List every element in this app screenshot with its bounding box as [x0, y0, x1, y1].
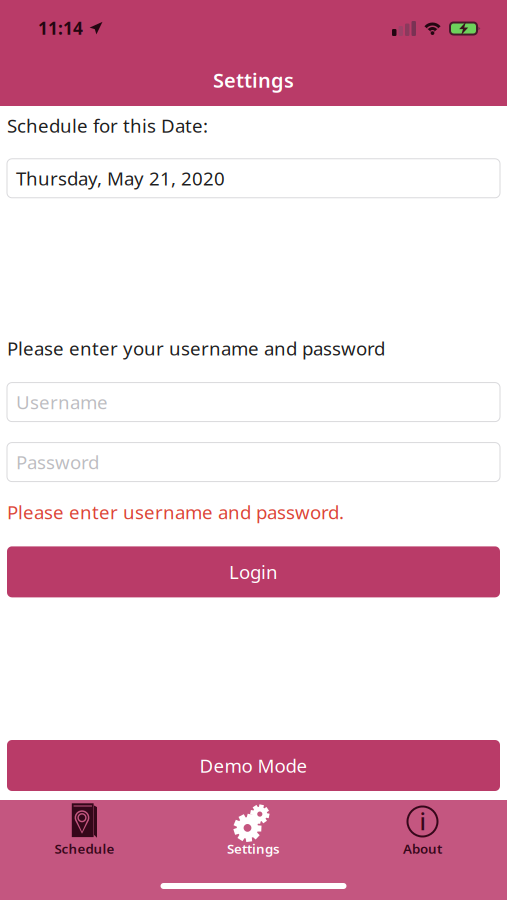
staticText: Demo Mode	[199, 753, 307, 778]
staticText: Password	[16, 450, 99, 474]
button[interactable]: Login	[7, 546, 500, 597]
button[interactable]: i	[338, 802, 507, 854]
staticText: Settings	[213, 67, 294, 93]
button[interactable]: Settings	[169, 802, 338, 854]
staticText: Schedule	[54, 840, 114, 857]
staticText: Settings	[227, 840, 280, 857]
staticText: Please enter username and password.	[7, 500, 344, 524]
button[interactable]: Schedule	[0, 802, 169, 854]
staticText: Thursday, May 21, 2020	[16, 166, 225, 191]
staticText: About	[403, 840, 442, 857]
staticText: Login	[229, 559, 278, 584]
staticText: Please enter your username and password	[7, 336, 385, 361]
staticText: Username	[16, 390, 108, 414]
button[interactable]: Demo Mode	[7, 740, 500, 791]
staticText: Schedule for this Date:	[7, 113, 208, 138]
staticText: i	[419, 805, 425, 837]
staticText: 11:14	[38, 16, 83, 39]
